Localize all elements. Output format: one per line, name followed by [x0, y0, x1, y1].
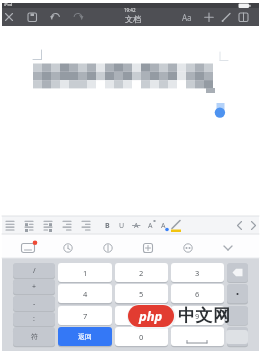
button[interactable]	[171, 327, 224, 346]
button[interactable]	[181, 9, 197, 25]
button[interactable]: 返回	[58, 327, 112, 346]
button[interactable]	[47, 9, 63, 25]
staticText: 文档	[125, 14, 141, 24]
button[interactable]	[227, 263, 248, 282]
staticText: 1	[83, 268, 88, 278]
staticText: B	[105, 221, 110, 231]
staticText: 19:42	[124, 7, 136, 13]
staticText: iPod	[4, 2, 13, 7]
staticText: U	[119, 221, 125, 231]
staticText: php	[139, 307, 163, 325]
staticText: 8	[139, 311, 144, 321]
button[interactable]: 8	[115, 306, 168, 325]
staticText: 3	[195, 268, 200, 278]
button[interactable]: 9	[171, 306, 224, 325]
staticText: 7	[83, 311, 88, 321]
button[interactable]	[236, 9, 252, 25]
staticText: 0	[139, 332, 144, 342]
button[interactable]: /	[13, 263, 55, 278]
staticText: -	[33, 299, 36, 309]
button[interactable]: :	[13, 312, 55, 326]
button[interactable]: 7	[58, 306, 112, 325]
staticText: 5	[139, 289, 144, 299]
button[interactable]: +	[13, 279, 55, 294]
button[interactable]: php	[128, 305, 174, 327]
staticText: 6	[195, 289, 200, 299]
staticText: +	[32, 282, 37, 292]
staticText: 符	[31, 332, 38, 341]
staticText: A	[161, 221, 166, 231]
button[interactable]	[24, 9, 40, 25]
staticText: A	[148, 221, 153, 231]
staticText: A	[134, 221, 139, 231]
button[interactable]	[218, 9, 234, 25]
button[interactable]: 5	[115, 284, 168, 303]
button[interactable]: 4	[58, 284, 112, 303]
staticText: :	[33, 314, 35, 324]
button[interactable]	[227, 327, 248, 346]
button[interactable]	[227, 306, 248, 325]
button[interactable]: 0	[115, 327, 168, 346]
button[interactable]	[227, 284, 248, 303]
button[interactable]: 3	[171, 263, 224, 282]
button[interactable]	[70, 9, 86, 25]
button[interactable]: 1	[58, 263, 112, 282]
staticText: 返回	[78, 332, 92, 341]
button[interactable]: 6	[171, 284, 224, 303]
button[interactable]: 符	[13, 327, 55, 346]
staticText: 4	[83, 289, 88, 299]
button[interactable]	[201, 9, 217, 25]
staticText: Aa	[182, 12, 192, 23]
button[interactable]: -	[13, 296, 55, 311]
staticText: 2	[139, 268, 144, 278]
staticText: /	[33, 266, 36, 276]
staticText: 中文网	[178, 305, 231, 326]
staticText: 9	[195, 311, 200, 321]
button[interactable]: 2	[115, 263, 168, 282]
button[interactable]	[1, 9, 17, 25]
